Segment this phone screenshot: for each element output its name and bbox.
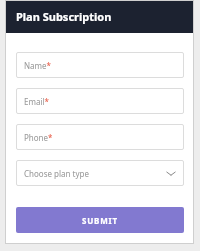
button[interactable]: Name* (16, 52, 184, 78)
button[interactable]: Choose plan type (16, 160, 184, 186)
staticText: SUBMIT (82, 215, 118, 226)
button[interactable]: Phone* (16, 124, 184, 150)
staticText: Phone* (24, 132, 53, 143)
staticText: Email* (24, 96, 49, 107)
staticText: Plan Subscription (16, 9, 112, 24)
staticText: Name* (24, 60, 51, 71)
button[interactable]: Submit (16, 207, 184, 233)
staticText: Choose plan type (24, 168, 89, 179)
button[interactable]: Email* (16, 88, 184, 114)
